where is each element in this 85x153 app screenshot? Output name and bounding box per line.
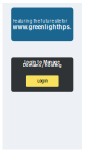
staticText: Login bbox=[37, 79, 47, 83]
staticText: Login to Manage bbox=[24, 60, 60, 65]
staticText: www.greenlighthps. bbox=[13, 24, 72, 31]
button[interactable]: Login bbox=[26, 75, 58, 87]
staticText: Domains / hosting bbox=[23, 63, 62, 68]
staticText: Featuring the future site for bbox=[13, 18, 68, 24]
